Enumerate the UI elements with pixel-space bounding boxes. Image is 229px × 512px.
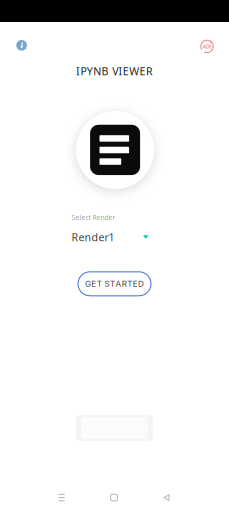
button[interactable]: Remove ads	[192, 32, 222, 60]
staticText: GET STARTED	[85, 279, 144, 289]
button[interactable]: GET STARTED	[78, 272, 151, 296]
button[interactable]: Recent apps	[35, 487, 88, 509]
button[interactable]: About	[7, 31, 37, 59]
button[interactable]: Back	[140, 487, 193, 509]
button[interactable]: Render1	[71, 231, 148, 243]
staticText: Render1	[71, 230, 114, 244]
staticText: IPYNB VIEWER	[76, 64, 153, 78]
staticText: Select Render	[71, 213, 115, 222]
button[interactable]: Home	[88, 487, 140, 509]
staticText: ADS	[202, 44, 211, 50]
